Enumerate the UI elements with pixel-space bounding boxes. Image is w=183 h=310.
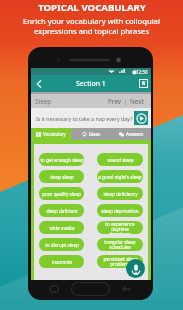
button[interactable]: Play audio bbox=[134, 111, 148, 125]
staticText: Sleep bbox=[35, 97, 52, 106]
button[interactable]: insomnia bbox=[39, 255, 84, 268]
staticText: 12:30 bbox=[136, 69, 148, 75]
button[interactable]: wide awake bbox=[39, 221, 84, 234]
button[interactable]: persistent sleep problems bbox=[97, 255, 143, 268]
staticText: sleep deprivation bbox=[101, 208, 139, 214]
button[interactable]: Prev bbox=[106, 97, 124, 106]
staticText: | bbox=[124, 97, 128, 106]
staticText: Next bbox=[130, 97, 145, 106]
staticText: Prev bbox=[108, 97, 122, 106]
staticText: wide awake bbox=[49, 225, 75, 231]
button[interactable]: to disrupt sleep bbox=[39, 238, 84, 251]
staticText: Answers bbox=[126, 131, 144, 137]
button[interactable]: sound sleep bbox=[97, 153, 143, 166]
button[interactable]: Ideas bbox=[71, 128, 111, 140]
button[interactable]: Vocabulary bbox=[31, 128, 71, 140]
button[interactable]: to experience daytime sleepiness bbox=[97, 221, 143, 234]
staticText: TOPICAL VOCABULARY bbox=[38, 1, 146, 14]
button[interactable]: Answers bbox=[111, 128, 151, 140]
button[interactable]: sleep deprivation bbox=[97, 204, 143, 217]
staticText: sound sleep bbox=[107, 157, 134, 163]
button[interactable]: Voice search bbox=[126, 259, 145, 278]
staticText: to get enough sleep bbox=[40, 157, 84, 163]
staticText: insomnia bbox=[52, 259, 72, 265]
staticText: Is it necessary to take a nap every day? bbox=[36, 115, 133, 122]
staticText: irregular sleep schedules bbox=[104, 239, 136, 250]
button[interactable]: irregular sleep schedules bbox=[97, 238, 143, 251]
staticText: poor quality sleep bbox=[42, 191, 81, 197]
staticText: to experience daytime sleepiness bbox=[97, 221, 143, 234]
staticText: deep sleep bbox=[50, 174, 74, 180]
button[interactable]: to get enough sleep bbox=[39, 153, 84, 166]
staticText: sleep deficient bbox=[46, 208, 78, 214]
button[interactable]: poor quality sleep bbox=[39, 187, 84, 200]
button[interactable]: Next bbox=[128, 97, 147, 106]
staticText: a good night's sleep bbox=[98, 174, 142, 180]
button[interactable]: a good night's sleep bbox=[97, 170, 143, 183]
staticText: Vocabulary bbox=[43, 131, 66, 137]
button[interactable]: sleep deficiency bbox=[97, 187, 143, 200]
staticText: to disrupt sleep bbox=[45, 242, 79, 248]
button[interactable]: Bookmark bbox=[135, 75, 151, 92]
staticText: sleep deficiency bbox=[103, 191, 138, 197]
button[interactable]: Back bbox=[31, 75, 47, 92]
staticText: persistent sleep problems bbox=[103, 256, 138, 267]
staticText: Ideas bbox=[89, 131, 101, 137]
staticText: Section 1 bbox=[76, 79, 106, 89]
staticText: Enrich your vocabulary with colloquial e… bbox=[23, 16, 160, 36]
button[interactable]: deep sleep bbox=[39, 170, 84, 183]
button[interactable]: sleep deficient bbox=[39, 204, 84, 217]
